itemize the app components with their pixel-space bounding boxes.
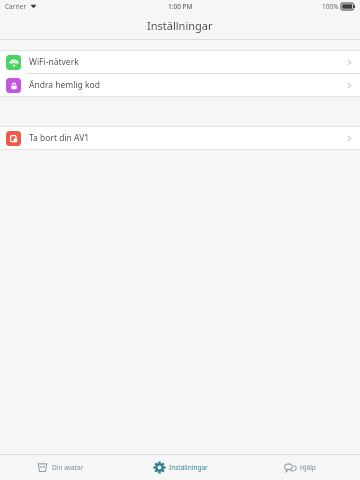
staticText: Inställningar [147, 18, 213, 33]
button[interactable]: WiFi-nätverk [0, 51, 360, 73]
staticText: 100% [322, 2, 339, 11]
button[interactable]: Hjälp [240, 455, 360, 480]
other: Din avatar [36, 461, 49, 474]
staticText: 1:00 PM [168, 2, 193, 11]
staticText: Ta bort din AV1 [29, 132, 90, 144]
staticText: WiFi-nätverk [29, 56, 79, 68]
staticText: Inställningar [169, 463, 208, 472]
button[interactable]: Din avatar [0, 455, 120, 480]
staticText: Ändra hemlig kod [29, 79, 100, 91]
other: Inställningar [153, 461, 166, 474]
button[interactable]: Inställningar [120, 455, 240, 480]
staticText: Hjälp [300, 463, 316, 472]
other: Hjälp [284, 461, 297, 474]
staticText: Carrier [5, 2, 27, 11]
button[interactable]: Ändra hemlig kod [0, 74, 360, 96]
button[interactable]: Ta bort din AV1 [0, 127, 360, 149]
staticText: Din avatar [52, 463, 84, 472]
